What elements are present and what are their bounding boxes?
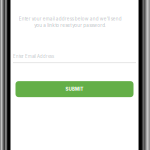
staticText: Enter Email Address xyxy=(13,54,54,59)
staticText: Enter your email address below and we'll… xyxy=(18,16,121,28)
staticText: SUBMIT xyxy=(65,86,83,92)
button[interactable]: SUBMIT xyxy=(15,81,133,97)
